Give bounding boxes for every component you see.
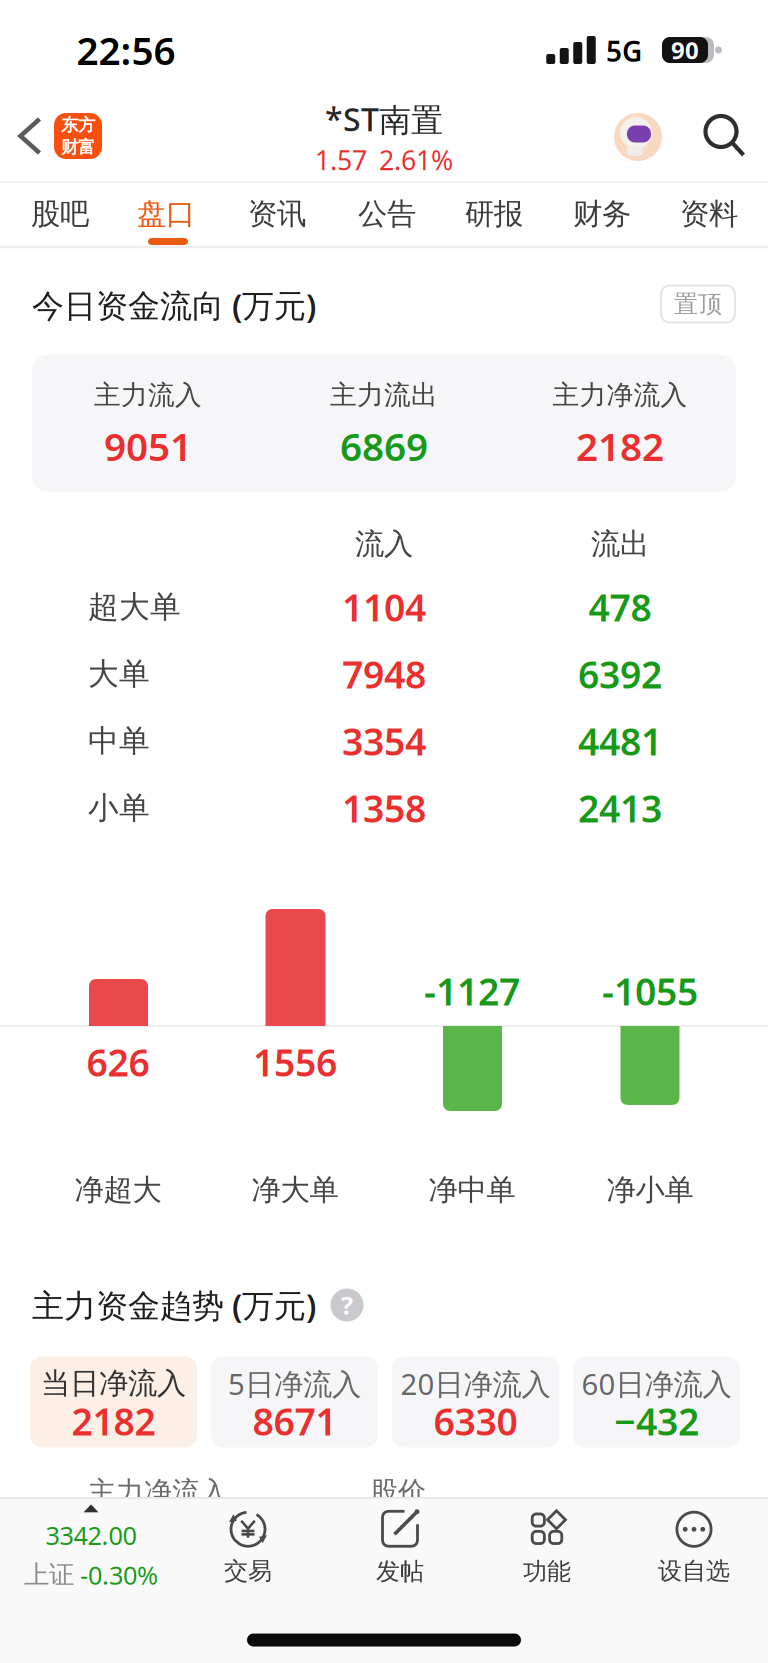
staticText: 净中单 <box>428 1172 515 1208</box>
staticText: −432 <box>614 1396 699 1446</box>
button[interactable]: 财务 <box>569 190 635 238</box>
staticText: 流入 <box>355 526 413 562</box>
staticText: -1127 <box>424 966 520 1016</box>
staticText: 大单 <box>88 655 150 693</box>
staticText: 7948 <box>342 649 426 699</box>
staticText: 6392 <box>578 649 662 699</box>
button[interactable]: 盘口 <box>133 190 199 238</box>
staticText: 5日净流入 <box>228 1364 361 1403</box>
button[interactable]: 设自选 <box>658 1510 730 1586</box>
button[interactable]: Help <box>330 1288 363 1321</box>
staticText: 主力流出 <box>330 379 438 411</box>
staticText: 1104 <box>342 582 426 632</box>
staticText: 当日净流入 <box>41 1365 186 1401</box>
button[interactable]: 资料 <box>676 190 742 238</box>
staticText: 公告 <box>358 196 416 232</box>
staticText: 20日净流入 <box>400 1364 550 1403</box>
staticText: 8671 <box>252 1396 336 1446</box>
button[interactable]: 发帖 <box>376 1510 424 1586</box>
staticText: 2182 <box>71 1396 155 1446</box>
button[interactable]: 置顶 <box>660 284 736 323</box>
staticText: 2182 <box>576 420 664 472</box>
staticText: 626 <box>86 1037 149 1087</box>
staticText: 股价 <box>370 1475 426 1509</box>
staticText: 东方 <box>61 114 95 135</box>
staticText: 股吧 <box>31 196 89 232</box>
staticText: 1556 <box>253 1037 337 1087</box>
staticText: 财务 <box>573 196 631 232</box>
staticText: 交易 <box>224 1556 272 1586</box>
button[interactable]: 公告 <box>354 190 420 238</box>
staticText: 研报 <box>465 196 523 232</box>
staticText: 资讯 <box>248 196 306 232</box>
staticText: 中单 <box>88 722 150 760</box>
staticText: 小单 <box>88 789 150 827</box>
staticText: 净超大 <box>74 1172 161 1208</box>
staticText: -1055 <box>602 966 698 1016</box>
button[interactable]: 资讯 <box>244 190 310 238</box>
button[interactable]: 当日净流入 <box>30 1356 197 1447</box>
staticText: 发帖 <box>376 1557 424 1586</box>
staticText: 5G <box>606 32 642 70</box>
staticText: *ST南置 <box>325 98 443 140</box>
staticText: 90 <box>671 34 699 66</box>
staticText: -0.30% <box>80 1558 158 1592</box>
staticText: 4481 <box>578 716 662 766</box>
button[interactable]: Back <box>10 109 49 163</box>
staticText: 资料 <box>680 196 738 232</box>
staticText: 净小单 <box>606 1172 693 1208</box>
staticText: 流出 <box>591 526 649 562</box>
staticText: 今日资金流向 (万元) <box>32 284 316 326</box>
staticText: 2.61% <box>379 142 453 178</box>
staticText: 478 <box>588 582 651 632</box>
staticText: 主力流入 <box>94 379 202 411</box>
staticText: 2413 <box>578 783 662 833</box>
button[interactable]: Search <box>697 108 750 162</box>
staticText: 3354 <box>342 716 426 766</box>
staticText: 6330 <box>433 1396 517 1446</box>
button[interactable]: 上证指数 <box>1 1493 181 1603</box>
staticText: 财富 <box>61 136 95 158</box>
staticText: 1358 <box>342 783 426 833</box>
staticText: 上证 <box>24 1559 74 1590</box>
staticText: 设自选 <box>658 1556 730 1586</box>
button[interactable]: 60日净流入 <box>573 1356 740 1447</box>
button[interactable]: 交易 <box>224 1510 272 1586</box>
staticText: 盘口 <box>137 196 195 232</box>
button[interactable]: 20日净流入 <box>392 1356 559 1447</box>
button[interactable]: 功能 <box>523 1510 571 1586</box>
staticText: 6869 <box>340 420 428 472</box>
staticText: 主力净流入 <box>552 379 687 411</box>
button[interactable]: 5日净流入 <box>211 1356 378 1447</box>
staticText: 主力资金趋势 (万元) <box>32 1284 316 1326</box>
button[interactable]: Assistant <box>614 113 662 161</box>
staticText: ? <box>341 1288 353 1322</box>
staticText: 22:56 <box>76 24 175 76</box>
staticText: 主力净流入 <box>88 1475 228 1509</box>
staticText: 超大单 <box>88 588 181 626</box>
staticText: 净大单 <box>251 1172 338 1208</box>
staticText: 9051 <box>104 420 192 472</box>
button[interactable]: 研报 <box>461 190 527 238</box>
staticText: 60日净流入 <box>581 1364 731 1403</box>
staticText: 功能 <box>523 1557 571 1586</box>
staticText: 3342.00 <box>45 1518 136 1552</box>
staticText: 置顶 <box>674 289 722 319</box>
button[interactable]: 股吧 <box>27 190 93 238</box>
staticText: 1.57 <box>315 142 367 178</box>
button[interactable]: 东方财富 <box>54 113 102 159</box>
